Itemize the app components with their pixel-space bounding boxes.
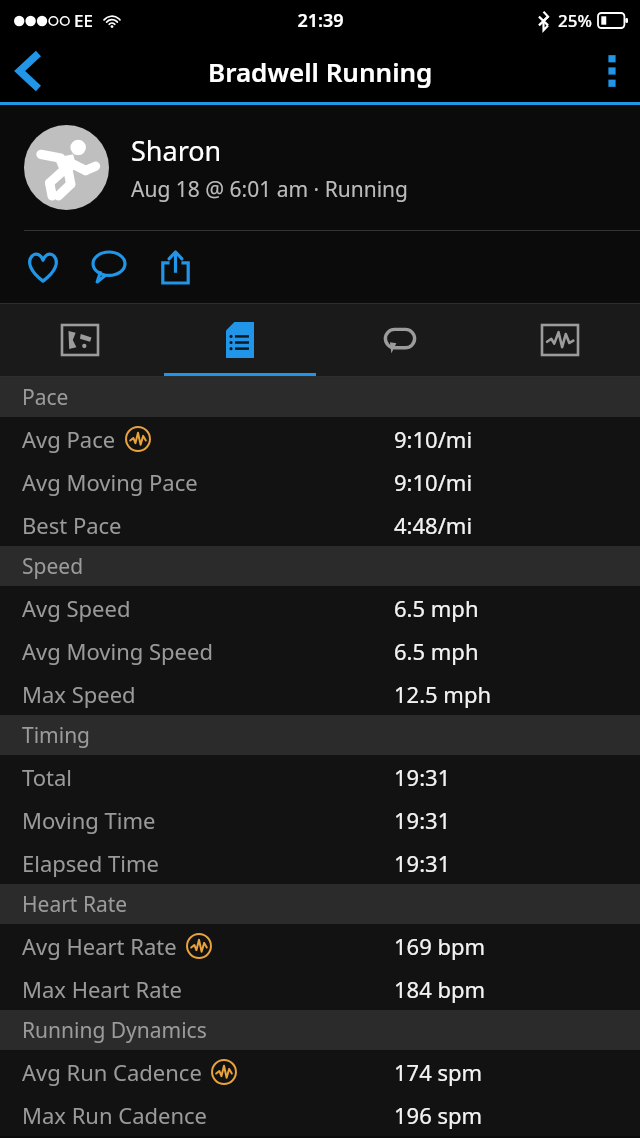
staticText: Avg Moving Pace (22, 467, 198, 497)
staticText: 6.5 mph (394, 593, 479, 623)
button[interactable]: More options (584, 43, 640, 99)
staticText: Avg Moving Speed (22, 636, 213, 666)
button[interactable]: Charts (480, 303, 640, 377)
staticText: Avg Heart Rate (22, 931, 177, 961)
staticText: Running Dynamics (22, 1016, 207, 1045)
staticText: Total (22, 762, 72, 792)
button[interactable]: Comment (80, 238, 138, 296)
button[interactable]: Details (160, 303, 320, 377)
staticText: 19:31 (394, 805, 451, 835)
button[interactable]: Best Pace (0, 503, 640, 546)
button[interactable]: Max Heart Rate (0, 967, 640, 1010)
staticText: 184 bpm (394, 974, 486, 1004)
staticText: 6.5 mph (394, 636, 479, 666)
button[interactable]: Total (0, 755, 640, 798)
button[interactable]: Avg Run Cadence (0, 1050, 640, 1093)
button[interactable]: Avg Heart Rate (0, 924, 640, 967)
button[interactable]: Laps (320, 303, 480, 377)
button[interactable]: Share (146, 238, 204, 296)
staticText: Avg Speed (22, 593, 131, 623)
staticText: Avg Run Cadence (22, 1057, 202, 1087)
button[interactable]: Moving Time (0, 798, 640, 841)
staticText: 196 spm (394, 1100, 483, 1130)
button[interactable]: Avg Speed (0, 586, 640, 629)
button[interactable]: Back (0, 43, 56, 99)
staticText: Speed (22, 552, 84, 581)
button[interactable]: Avg Moving Speed (0, 629, 640, 672)
staticText: Pace (22, 383, 69, 412)
button[interactable]: Map (0, 303, 160, 377)
staticText: Aug 18 @ 6:01 am · Running (131, 175, 408, 204)
staticText: Bradwell Running (208, 54, 433, 89)
staticText: Timing (22, 721, 91, 750)
staticText: Sharon (131, 132, 222, 169)
staticText: 9:10/mi (394, 424, 473, 454)
staticText: 19:31 (394, 762, 451, 792)
staticText: Best Pace (22, 510, 122, 540)
staticText: 174 spm (394, 1057, 483, 1087)
staticText: Heart Rate (22, 890, 128, 919)
staticText: 9:10/mi (394, 467, 473, 497)
button[interactable]: Avg Pace (0, 417, 640, 460)
staticText: Elapsed Time (22, 848, 159, 878)
staticText: 25% (558, 9, 592, 32)
staticText: 12.5 mph (394, 679, 492, 709)
staticText: Max Run Cadence (22, 1100, 207, 1130)
staticText: 21:39 (297, 8, 344, 33)
staticText: Moving Time (22, 805, 156, 835)
staticText: 4:48/mi (394, 510, 473, 540)
staticText: Max Speed (22, 679, 136, 709)
staticText: Max Heart Rate (22, 974, 182, 1004)
button[interactable]: Like (14, 238, 72, 296)
button[interactable]: Max Speed (0, 672, 640, 715)
button[interactable]: Elapsed Time (0, 841, 640, 884)
button[interactable]: Avg Moving Pace (0, 460, 640, 503)
button[interactable]: Max Run Cadence (0, 1093, 640, 1136)
staticText: Avg Pace (22, 424, 116, 454)
staticText: 169 bpm (394, 931, 486, 961)
staticText: 19:31 (394, 848, 451, 878)
staticText: EE (74, 9, 93, 32)
